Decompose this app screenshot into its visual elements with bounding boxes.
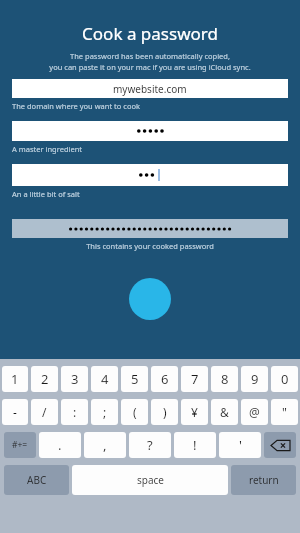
staticText: The password has been automatically copi… <box>0 51 300 72</box>
button[interactable] <box>12 219 288 238</box>
button[interactable]: Backspace <box>264 432 296 458</box>
staticText: / <box>42 404 47 420</box>
button[interactable]: & <box>211 399 238 425</box>
button[interactable]: . <box>39 432 81 458</box>
staticText: 8 <box>221 370 229 388</box>
button[interactable]: ! <box>174 432 216 458</box>
staticText: : <box>73 404 77 420</box>
button[interactable]: 1 <box>2 366 28 392</box>
button[interactable]: @ <box>241 399 268 425</box>
staticText: mywebsite.com <box>113 82 187 96</box>
button[interactable]: ¥ <box>181 399 208 425</box>
button[interactable]: Cook password <box>129 278 171 320</box>
button[interactable]: space <box>72 465 228 495</box>
button[interactable]: 6 <box>151 366 178 392</box>
button[interactable]: ' <box>219 432 261 458</box>
button[interactable]: " <box>271 399 298 425</box>
staticText: 1 <box>11 370 19 388</box>
staticText: @ <box>249 404 260 420</box>
staticText: space <box>137 473 164 487</box>
staticText: ! <box>193 436 197 454</box>
staticText: 6 <box>161 370 169 388</box>
button[interactable]: 4 <box>91 366 118 392</box>
staticText: 3 <box>71 370 79 388</box>
staticText: & <box>220 404 229 420</box>
staticText: 5 <box>131 370 139 388</box>
staticText: ; <box>103 404 107 420</box>
button[interactable]: return <box>231 465 296 495</box>
button[interactable] <box>12 164 288 186</box>
button[interactable] <box>12 121 288 141</box>
staticText: ¥ <box>191 404 198 420</box>
staticText: . <box>58 436 62 454</box>
button[interactable]: ) <box>151 399 178 425</box>
button[interactable]: 7 <box>181 366 208 392</box>
staticText: 7 <box>191 370 199 388</box>
button[interactable]: ; <box>91 399 118 425</box>
staticText: ' <box>239 436 242 454</box>
button[interactable]: mywebsite.com <box>12 79 288 98</box>
staticText: 4 <box>101 370 109 388</box>
staticText: 2 <box>41 370 49 388</box>
button[interactable]: - <box>2 399 28 425</box>
staticText: Cook a password <box>0 22 300 45</box>
staticText: 9 <box>251 370 259 388</box>
button[interactable]: 8 <box>211 366 238 392</box>
staticText: , <box>103 436 107 454</box>
button[interactable]: , <box>84 432 126 458</box>
button[interactable]: ( <box>121 399 148 425</box>
staticText: ) <box>163 404 167 420</box>
staticText: This contains your cooked password <box>12 241 288 251</box>
button[interactable]: 2 <box>31 366 58 392</box>
staticText: ABC <box>27 473 47 487</box>
button[interactable]: 5 <box>121 366 148 392</box>
button[interactable]: : <box>61 399 88 425</box>
staticText: return <box>249 473 279 487</box>
staticText: ( <box>133 404 137 420</box>
button[interactable]: ABC <box>4 465 69 495</box>
button[interactable]: / <box>31 399 58 425</box>
staticText: " <box>282 404 287 420</box>
staticText: #+= <box>12 439 28 451</box>
button[interactable]: 3 <box>61 366 88 392</box>
staticText: 0 <box>281 370 289 388</box>
button[interactable]: ? <box>129 432 171 458</box>
staticText: A master ingredient <box>12 144 83 154</box>
staticText: The domain where you want to cook <box>12 101 140 111</box>
button[interactable]: 9 <box>241 366 268 392</box>
staticText: ? <box>147 436 153 454</box>
staticText: An a little bit of salt <box>12 189 80 199</box>
staticText: - <box>13 404 17 420</box>
button[interactable]: #+= <box>4 432 36 458</box>
button[interactable]: 0 <box>271 366 298 392</box>
